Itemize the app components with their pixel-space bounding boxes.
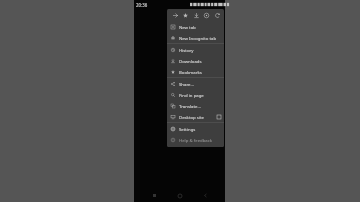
staticText: Downloads xyxy=(179,58,221,64)
staticText: Share… xyxy=(179,81,221,87)
button[interactable]: Desktop site xyxy=(167,111,224,122)
staticText: Help & feedback xyxy=(179,137,221,143)
button[interactable]: Help & feedback xyxy=(167,134,224,145)
staticText: Desktop site xyxy=(179,114,217,120)
button[interactable]: Bookmarks xyxy=(167,66,224,77)
staticText: New Incognito tab xyxy=(179,35,221,41)
button[interactable]: History xyxy=(167,44,224,55)
button[interactable]: Back xyxy=(200,190,211,201)
staticText: Bookmarks xyxy=(179,69,221,75)
staticText: Find in page xyxy=(179,92,221,98)
staticText: Translate… xyxy=(179,103,221,109)
button[interactable]: Translate… xyxy=(167,100,224,111)
button[interactable]: New tab xyxy=(167,21,224,32)
button[interactable]: Share… xyxy=(167,78,224,89)
staticText: New tab xyxy=(179,24,221,30)
button[interactable]: Home xyxy=(174,190,185,201)
button[interactable]: Downloads xyxy=(167,55,224,66)
button[interactable]: Forward xyxy=(170,10,180,20)
button[interactable]: Download page xyxy=(191,10,201,20)
button[interactable]: Bookmark xyxy=(180,10,190,20)
button[interactable]: New Incognito tab xyxy=(167,32,224,43)
button[interactable]: Recents xyxy=(149,190,160,201)
staticText: Settings xyxy=(179,126,221,132)
staticText: 20:36 xyxy=(136,2,148,8)
button[interactable]: Page info xyxy=(201,10,211,20)
button[interactable]: Find in page xyxy=(167,89,224,100)
staticText: History xyxy=(179,47,221,53)
button[interactable]: Reload xyxy=(212,10,222,20)
button[interactable]: Settings xyxy=(167,123,224,134)
